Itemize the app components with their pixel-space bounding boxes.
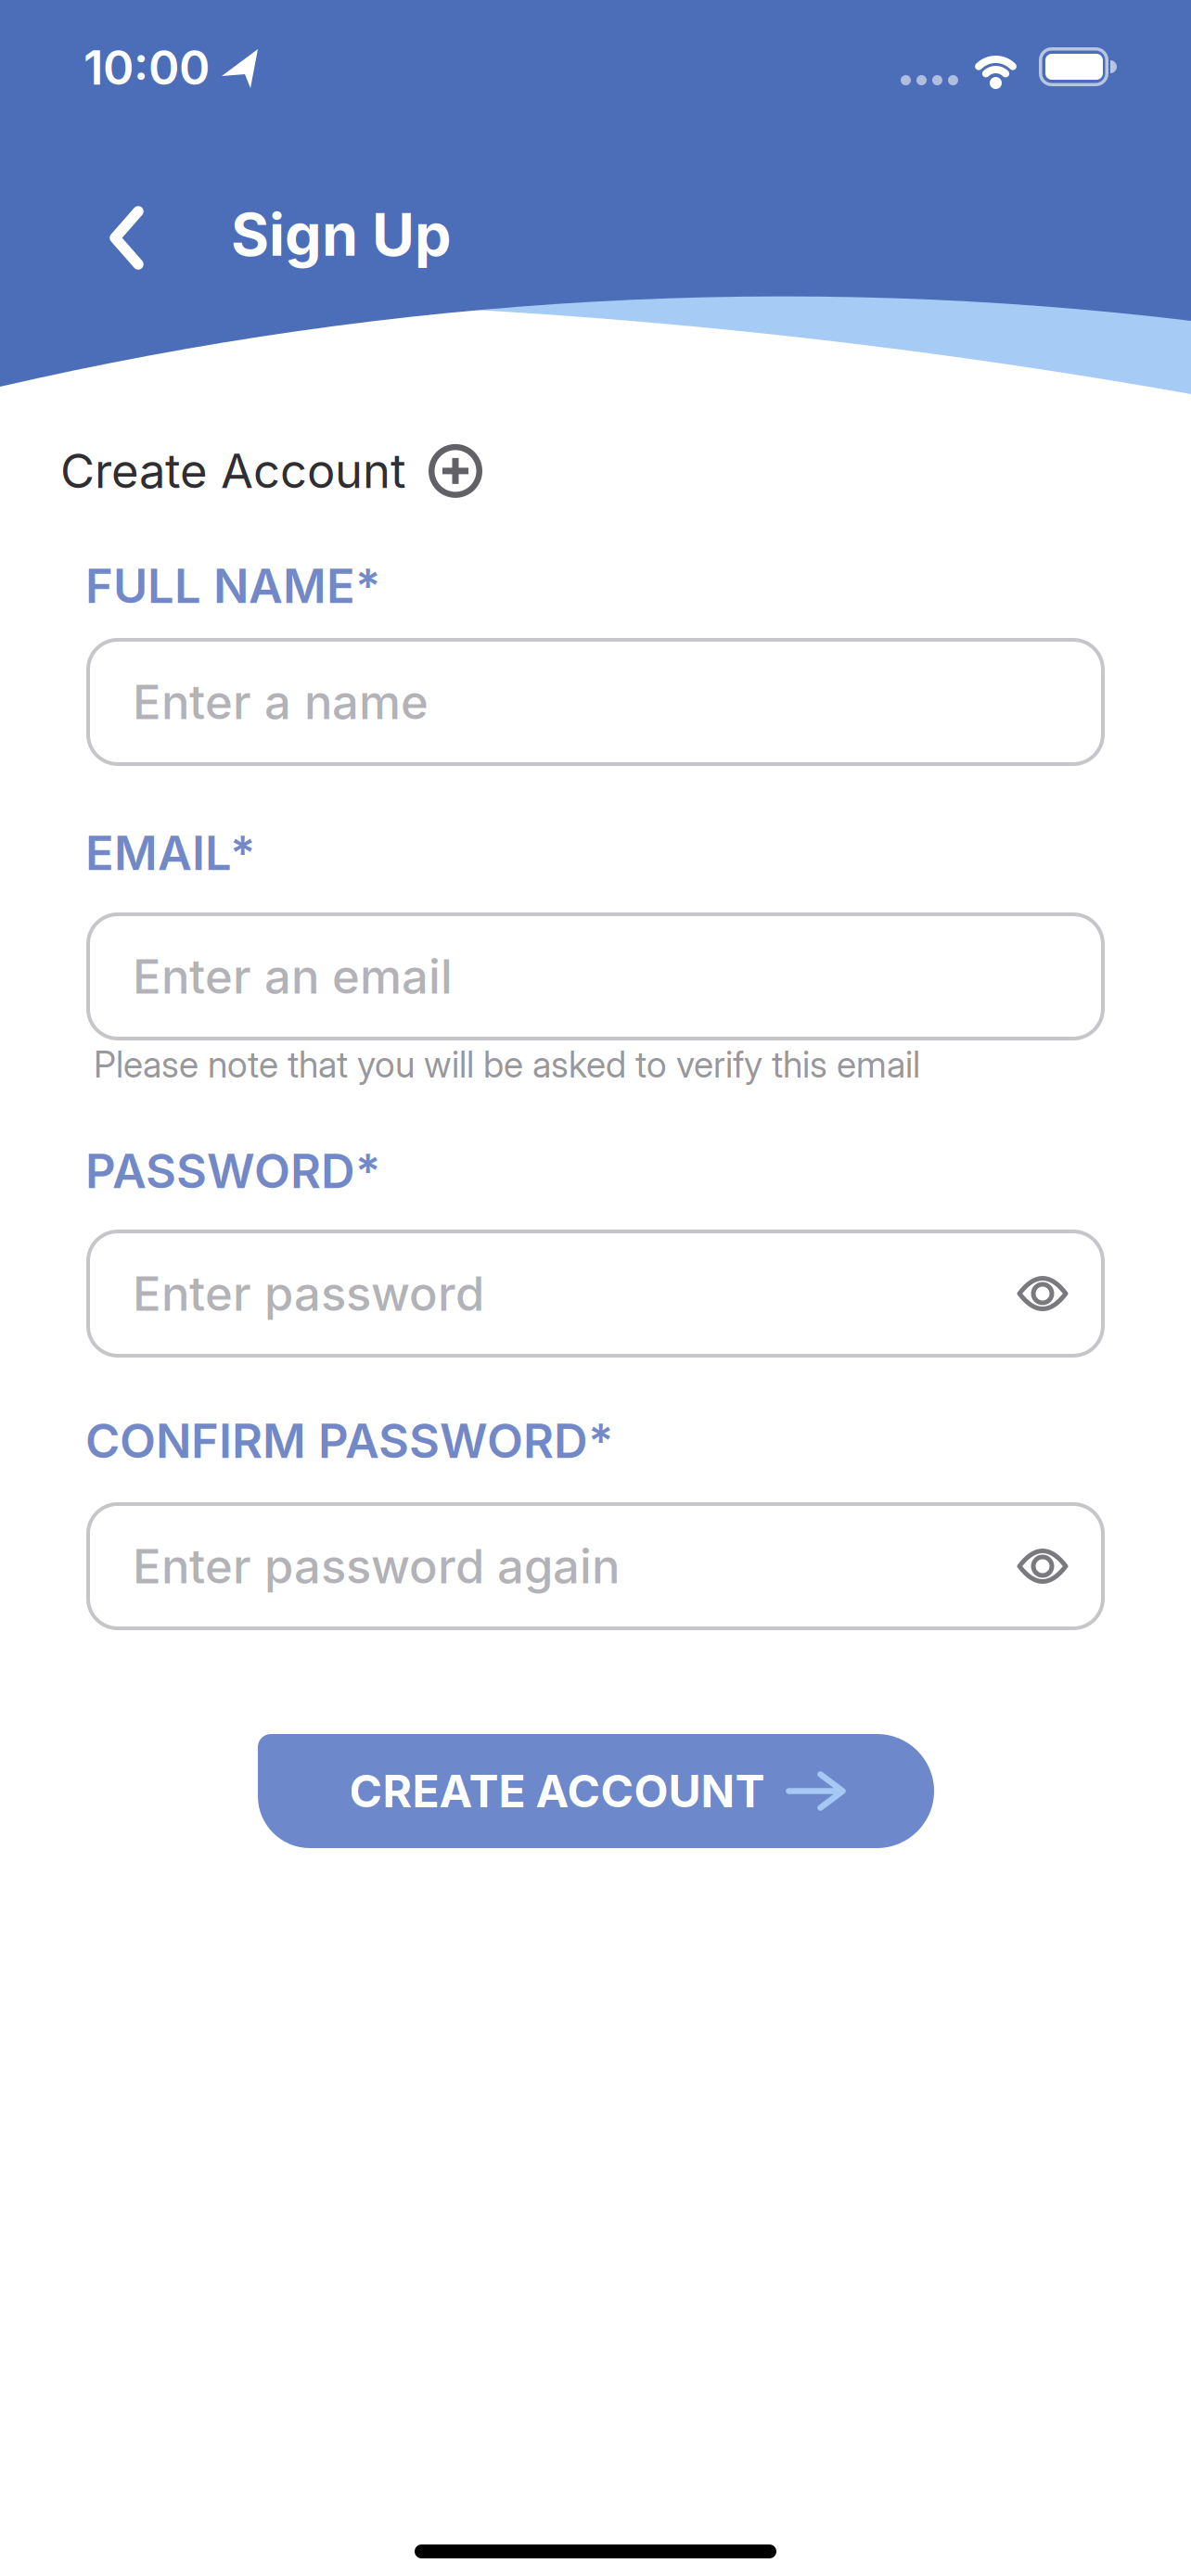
- button[interactable]: Enter an email: [86, 912, 1105, 1040]
- button[interactable]: [108, 205, 145, 271]
- staticText: Enter an email: [133, 949, 453, 1004]
- staticText: FULL NAME*: [85, 558, 380, 614]
- staticText: Enter a name: [133, 674, 429, 730]
- staticText: EMAIL*: [85, 825, 255, 881]
- staticText: PASSWORD*: [85, 1143, 380, 1199]
- staticText: Enter password: [133, 1266, 484, 1321]
- button[interactable]: Enter a name: [86, 638, 1105, 766]
- button[interactable]: Enter password again: [86, 1502, 1105, 1630]
- staticText: CREATE ACCOUNT: [349, 1765, 765, 1817]
- staticText: Create Account: [60, 443, 406, 499]
- staticText: Please note that you will be asked to ve…: [94, 1043, 920, 1085]
- staticText: 10:00: [83, 40, 210, 95]
- button[interactable]: [429, 444, 482, 498]
- button[interactable]: CREATE ACCOUNT: [258, 1734, 934, 1848]
- staticText: CONFIRM PASSWORD*: [85, 1413, 613, 1469]
- staticText: Enter password again: [133, 1538, 620, 1594]
- staticText: Sign Up: [231, 200, 452, 269]
- button[interactable]: Enter password: [86, 1230, 1105, 1358]
